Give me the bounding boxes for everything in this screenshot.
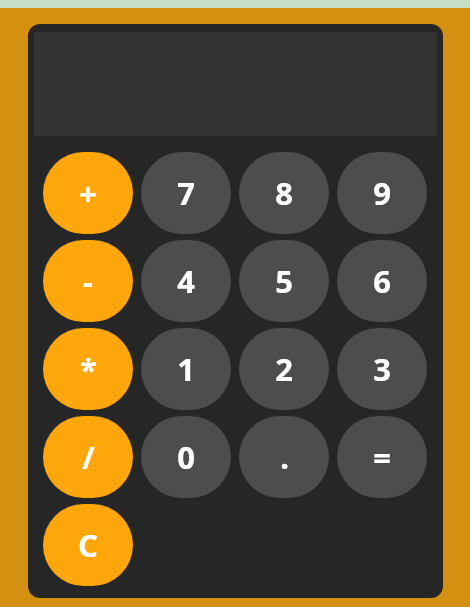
button[interactable]: 1: [141, 328, 231, 410]
button[interactable]: 9: [337, 152, 427, 234]
button[interactable]: *: [43, 328, 133, 410]
staticText: 3: [373, 348, 391, 390]
staticText: 4: [177, 260, 195, 302]
staticText: 8: [275, 172, 293, 214]
button[interactable]: .: [239, 416, 329, 498]
staticText: +: [79, 172, 97, 214]
staticText: C: [78, 524, 98, 566]
staticText: 6: [373, 260, 391, 302]
staticText: -: [83, 260, 93, 302]
button[interactable]: 7: [141, 152, 231, 234]
staticText: 5: [275, 260, 293, 302]
button[interactable]: C: [43, 504, 133, 586]
button[interactable]: 0: [141, 416, 231, 498]
button[interactable]: 4: [141, 240, 231, 322]
staticText: 1: [177, 348, 195, 390]
staticText: 7: [177, 172, 195, 214]
button[interactable]: 5: [239, 240, 329, 322]
button[interactable]: =: [337, 416, 427, 498]
staticText: .: [280, 436, 289, 478]
staticText: *: [80, 348, 97, 390]
staticText: 0: [177, 436, 195, 478]
staticText: 9: [373, 172, 391, 214]
button[interactable]: +: [43, 152, 133, 234]
button[interactable]: 2: [239, 328, 329, 410]
button[interactable]: 6: [337, 240, 427, 322]
button[interactable]: 8: [239, 152, 329, 234]
staticText: /: [82, 436, 95, 478]
button[interactable]: 3: [337, 328, 427, 410]
button[interactable]: /: [43, 416, 133, 498]
staticText: 2: [275, 348, 293, 390]
staticText: =: [373, 436, 391, 478]
button[interactable]: -: [43, 240, 133, 322]
